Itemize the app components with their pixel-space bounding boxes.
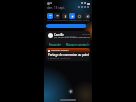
button[interactable]: Wi-Fi	[47, 13, 53, 19]
staticText: Bluetooth	[60, 19, 68, 22]
button[interactable]: Audio	[84, 13, 90, 19]
button[interactable]: Repondre	[48, 42, 63, 46]
button[interactable]: Systeme Android	[46, 48, 90, 61]
button[interactable]: Lampe	[69, 13, 75, 19]
button[interactable]: Avion	[76, 13, 82, 19]
staticText: Messages	[65, 34, 77, 37]
staticText: Donnees	[53, 19, 61, 22]
staticText: Wi-Fi	[47, 19, 53, 22]
button[interactable]: Donnees	[54, 13, 60, 19]
staticText: Marquer comme lu	[66, 43, 90, 46]
staticText: Camille	[54, 33, 64, 37]
staticText: Audio	[83, 19, 89, 22]
staticText: maintenant	[82, 33, 90, 36]
button[interactable]: Bluetooth	[62, 13, 68, 19]
staticText: 1 appareil connecte	[48, 56, 71, 59]
staticText: Lampe	[69, 19, 76, 22]
staticText: On se retrouve toujours demain soir ?	[54, 36, 90, 39]
staticText: Repondre	[49, 43, 62, 46]
button[interactable]: Brightness	[46, 24, 90, 28]
button[interactable]: Camille	[46, 31, 90, 46]
staticText: Partage de connexion ou point d'acces ac…	[48, 53, 90, 57]
staticText: Systeme Android	[51, 49, 69, 52]
button[interactable]: Marquer comme lu	[65, 42, 90, 46]
staticText: Avion	[76, 19, 82, 22]
staticText: dim. 15 sept.	[47, 6, 66, 10]
